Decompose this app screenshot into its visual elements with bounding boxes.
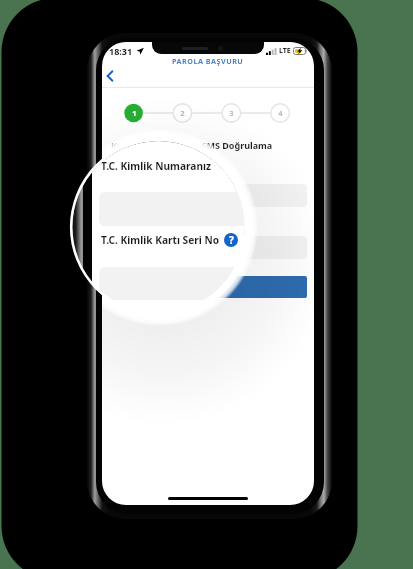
button[interactable] — [99, 267, 245, 300]
staticText: LTE — [279, 46, 291, 56]
button[interactable] — [107, 276, 307, 298]
staticText: 4 — [278, 108, 283, 118]
button[interactable]: Yardım — [224, 233, 238, 247]
button[interactable] — [107, 184, 307, 207]
button[interactable]: Geri — [102, 67, 119, 85]
staticText: T.C. Kimlik Kartı Seri No — [101, 233, 220, 247]
staticText: 3 — [229, 108, 234, 118]
staticText: PAROLA BAŞVURU — [172, 56, 244, 66]
staticText: 1 — [132, 108, 137, 118]
staticText: Kullanıcı Bilgileri ve SMS Doğrulama — [105, 141, 245, 144]
staticText: Kullanıcı Bilgileri ve SMS Doğrulama — [111, 139, 273, 151]
staticText: 2 — [180, 108, 185, 118]
staticText: T.C. Kimlik Numaranız — [101, 159, 212, 173]
staticText: T.C. Kimlik Numaranız — [108, 161, 184, 171]
staticText: ? — [229, 233, 234, 247]
staticText: 18:31 — [109, 45, 133, 57]
button[interactable] — [107, 236, 307, 259]
